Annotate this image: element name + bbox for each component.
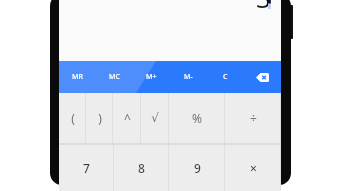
staticText: 8 — [138, 160, 145, 176]
staticText: 7 — [83, 160, 90, 176]
button[interactable]: M+ — [133, 61, 170, 93]
staticText: MC — [109, 72, 120, 82]
staticText: 3 — [256, 0, 271, 15]
staticText: C — [223, 72, 228, 82]
button[interactable]: 9 — [169, 145, 225, 191]
button[interactable]: ( — [59, 93, 86, 143]
button[interactable]: 7 — [59, 145, 114, 191]
button[interactable]: ÷ — [225, 93, 281, 143]
staticText: × — [250, 160, 257, 176]
staticText: M+ — [146, 72, 157, 82]
button[interactable]: × — [225, 145, 281, 191]
button[interactable]: MR — [59, 61, 96, 93]
button[interactable]: √ — [141, 93, 169, 143]
button[interactable]: % — [169, 93, 225, 143]
staticText: MR — [72, 72, 83, 82]
button[interactable]: M- — [170, 61, 207, 93]
staticText: ^ — [124, 110, 131, 126]
button[interactable]: MC — [96, 61, 133, 93]
staticText: M- — [184, 72, 193, 82]
button[interactable]: Backspace — [244, 61, 281, 93]
button[interactable]: 8 — [114, 145, 169, 191]
staticText: √ — [151, 111, 159, 125]
staticText: ) — [98, 110, 102, 126]
button[interactable]: ^ — [113, 93, 141, 143]
staticText: ( — [71, 110, 75, 126]
staticText: ÷ — [250, 110, 257, 126]
button[interactable]: C — [207, 61, 244, 93]
button[interactable]: ) — [86, 93, 113, 143]
staticText: % — [192, 110, 202, 126]
staticText: 9 — [194, 160, 201, 176]
